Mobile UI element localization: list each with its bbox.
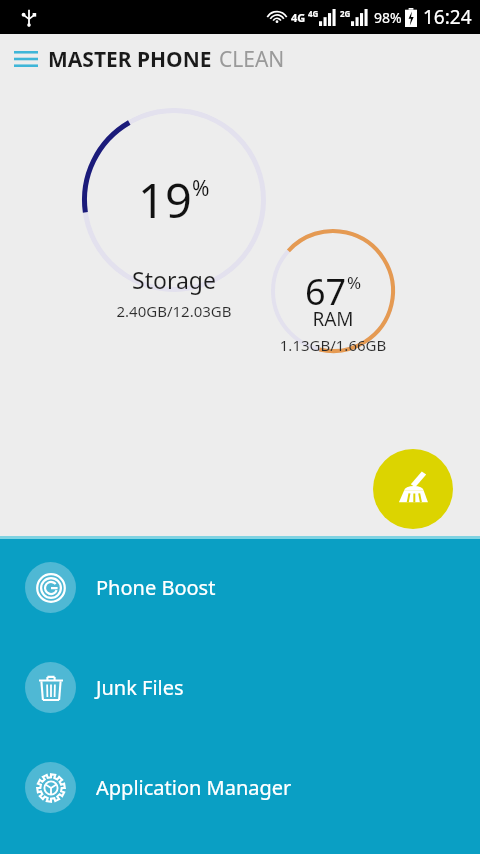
staticText: RAM [271,306,395,332]
button[interactable]: Clean [373,449,453,529]
button[interactable]: Menu [8,41,44,77]
staticText: CLEAN [219,45,285,74]
staticText: 19 [138,168,192,232]
staticText: 16:24 [423,4,472,30]
staticText: 1.13GB/1.66GB [258,335,408,355]
button[interactable]: Application Manager [0,757,480,817]
staticText: 98% [374,8,402,27]
button[interactable]: Junk Files [0,657,480,717]
staticText: MASTER PHONE [48,45,212,74]
staticText: 67 [305,267,347,316]
staticText: 4G [308,8,319,19]
staticText: 2G [340,8,351,19]
staticText: Phone Boost [96,574,216,601]
button[interactable]: Menu [0,34,480,83]
button[interactable]: Phone Boost [0,557,480,617]
staticText: Junk Files [96,674,184,701]
staticText: % [347,271,362,294]
staticText: 4G [291,10,306,25]
staticText: Application Manager [96,774,292,801]
staticText: 2.40GB/12.03GB [82,301,266,321]
staticText: % [192,174,210,203]
staticText: Storage [82,264,266,295]
